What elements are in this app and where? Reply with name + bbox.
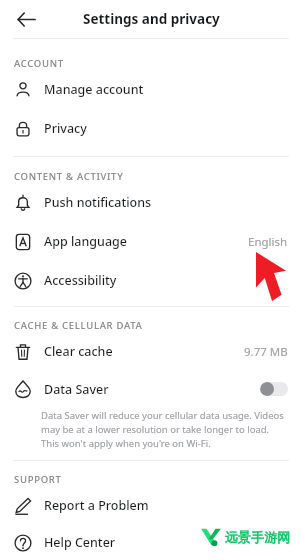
button[interactable]: Privacy [0,109,302,148]
button[interactable]: Data Saver [0,371,302,460]
staticText: Data Saver [44,381,109,398]
staticText: ACCOUNT [14,57,64,70]
staticText: SUPPORT [14,473,62,486]
staticText: 远景手游网 [225,529,290,545]
button[interactable]: Report a Problem [0,486,302,525]
staticText: Clear cache [44,343,113,360]
staticText: CACHE & CELLULAR DATA [14,319,143,332]
staticText: Push notifications [44,194,152,211]
button[interactable]: Clear cache [0,332,302,371]
button[interactable]: Help Center [0,525,302,560]
button[interactable]: Push notifications [0,183,302,222]
button[interactable]: Accessibility [0,261,302,300]
staticText: Data Saver will reduce your cellular dat… [41,409,288,450]
button[interactable]: App language [0,222,302,261]
button[interactable]: Manage account [0,70,302,109]
staticText: English [248,234,288,250]
staticText: App language [44,233,127,250]
staticText: Manage account [44,81,144,98]
staticText: 9.77 MB [244,344,288,360]
staticText: Privacy [44,120,87,137]
staticText: Accessibility [44,272,117,289]
staticText: Report a Problem [44,497,149,514]
staticText: Settings and privacy [83,10,220,28]
button[interactable]: Back [6,0,46,38]
staticText: CONTENT & ACTIVITY [14,170,124,183]
staticText: Help Center [44,534,116,551]
